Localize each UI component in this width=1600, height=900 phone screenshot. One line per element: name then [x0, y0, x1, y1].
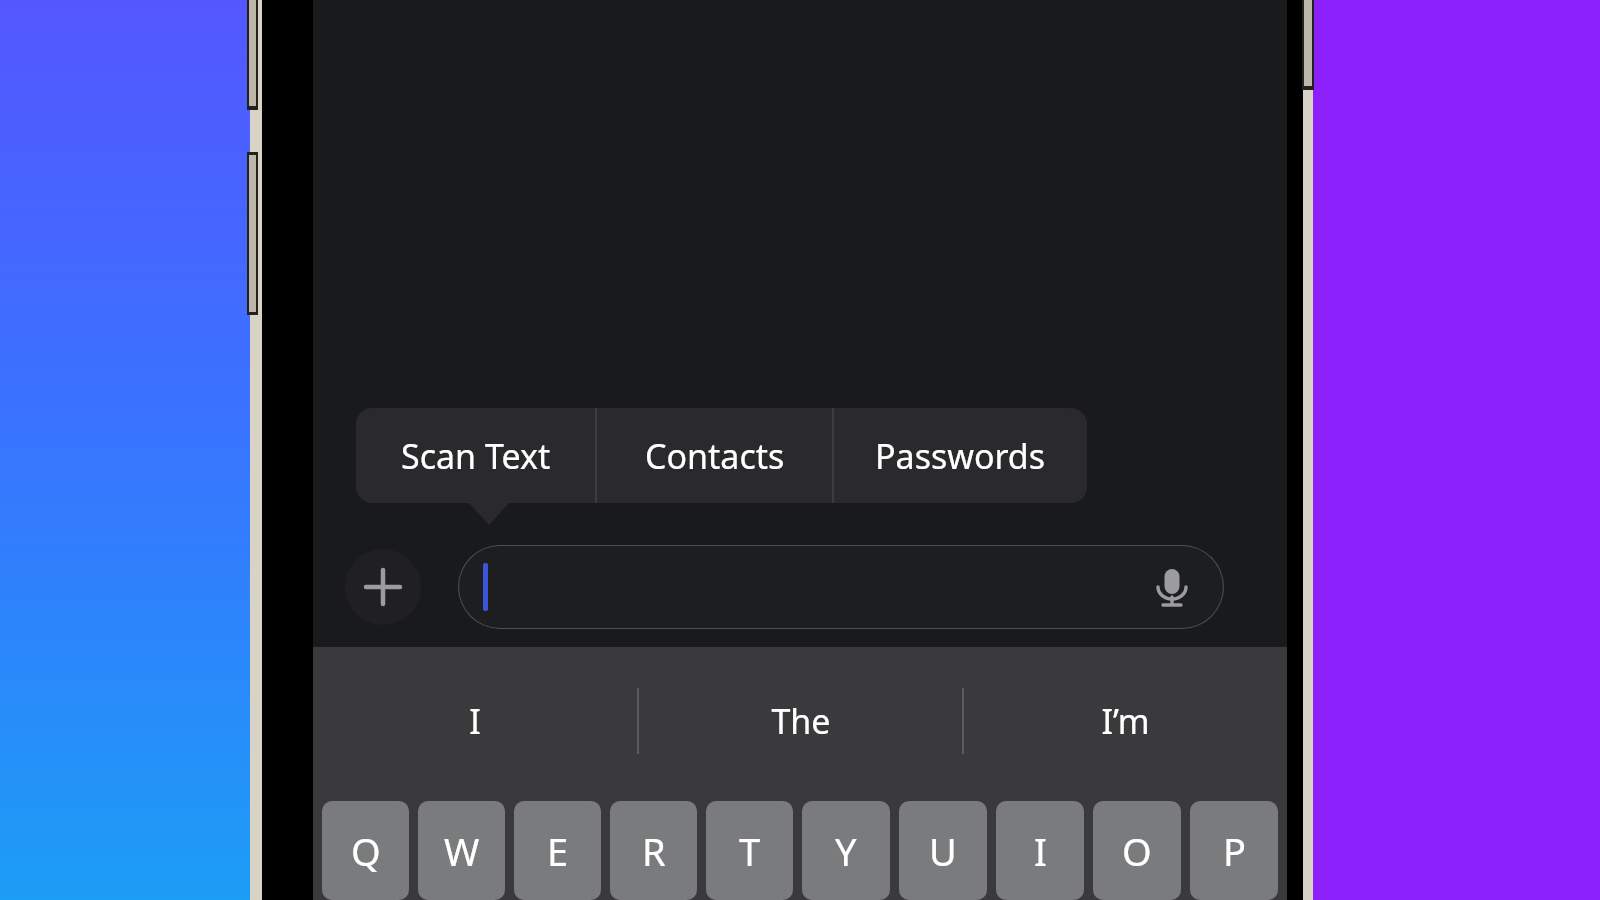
staticText: E — [547, 825, 569, 877]
button[interactable]: Voice input — [1146, 561, 1198, 613]
staticText: O — [1122, 825, 1152, 877]
button[interactable]: P — [1190, 801, 1278, 900]
staticText: R — [642, 825, 666, 877]
staticText: I — [469, 698, 481, 744]
button[interactable]: Scan Text — [356, 408, 595, 503]
button[interactable]: U — [899, 801, 987, 900]
staticText: Q — [351, 825, 381, 877]
staticText: I’m — [1101, 698, 1150, 744]
staticText: Scan Text — [401, 433, 551, 479]
staticText: Contacts — [645, 433, 785, 479]
staticText: W — [444, 825, 480, 877]
button[interactable]: Add attachment — [345, 549, 421, 625]
button[interactable]: The — [639, 647, 962, 795]
button[interactable]: Passwords — [834, 408, 1087, 503]
button[interactable]: Y — [802, 801, 890, 900]
button[interactable]: Contacts — [597, 408, 832, 503]
button[interactable]: Voice input — [458, 545, 1224, 629]
staticText: P — [1223, 825, 1246, 877]
button[interactable]: E — [514, 801, 601, 900]
staticText: I — [1034, 825, 1047, 877]
staticText: Passwords — [875, 433, 1046, 479]
staticText: U — [929, 825, 957, 877]
staticText: Y — [835, 825, 857, 877]
button[interactable]: I — [996, 801, 1084, 900]
button[interactable]: T — [706, 801, 793, 900]
button[interactable]: I — [313, 647, 637, 795]
button[interactable]: W — [418, 801, 505, 900]
button[interactable]: I’m — [964, 647, 1287, 795]
staticText: T — [739, 825, 761, 877]
button[interactable]: Q — [322, 801, 409, 900]
button[interactable]: R — [610, 801, 697, 900]
button[interactable]: O — [1093, 801, 1181, 900]
staticText: The — [771, 698, 831, 744]
